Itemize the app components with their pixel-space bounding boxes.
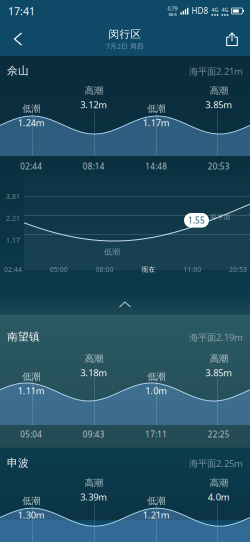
button[interactable]: 南望镇 <box>0 315 250 446</box>
staticText: 20:53 <box>229 265 247 274</box>
staticText: 佘山 <box>7 64 29 77</box>
staticText: 1.21m <box>143 509 170 521</box>
button[interactable]: 返回 <box>3 24 33 54</box>
staticText: 海平面2.25m <box>189 457 243 470</box>
staticText: 低潮 <box>147 103 165 114</box>
staticText: 高潮 <box>210 477 228 489</box>
staticText: 1.24m <box>18 116 45 129</box>
staticText: 0.79 <box>167 5 177 12</box>
staticText: 2.21 <box>6 214 20 223</box>
staticText: 海平面 <box>210 213 231 221</box>
staticText: 高潮 <box>210 353 228 364</box>
staticText: 3.18m <box>80 366 107 379</box>
staticText: 现在 <box>141 265 155 273</box>
staticText: 3.85m <box>205 366 232 379</box>
staticText: 7月2日 周四 <box>106 42 144 50</box>
staticText: 海平面2.21m <box>189 65 243 77</box>
staticText: 高潮 <box>85 85 103 96</box>
staticText: 08:00 <box>96 265 114 274</box>
staticText: 低潮 <box>147 371 165 382</box>
staticText: 08:14 <box>83 161 105 172</box>
staticText: 11:00 <box>183 265 201 274</box>
staticText: 高潮 <box>85 477 103 489</box>
staticText: 南望镇 <box>7 330 40 343</box>
staticText: HD8 <box>191 6 208 16</box>
staticText: 3.12m <box>80 98 107 111</box>
staticText: 4G <box>221 6 228 13</box>
staticText: 17:11 <box>145 429 167 440</box>
staticText: 低潮 <box>22 371 40 382</box>
button[interactable]: 收起 <box>0 294 250 315</box>
staticText: 1.55 <box>188 215 205 226</box>
staticText: 低潮 <box>147 495 165 507</box>
staticText: 3.85m <box>205 98 232 111</box>
button[interactable]: 佘山 <box>0 56 250 175</box>
button[interactable]: 分享 <box>217 24 247 54</box>
staticText: 05:04 <box>20 429 42 440</box>
staticText: 4G <box>211 6 218 13</box>
staticText: 1.30m <box>18 509 45 521</box>
staticText: 海平面2.19m <box>189 331 243 343</box>
staticText: 3.39m <box>80 491 107 503</box>
button[interactable]: 展开 <box>0 446 250 470</box>
staticText: 闵行区 <box>108 27 141 41</box>
staticText: 17:41 <box>8 4 35 18</box>
staticText: 低潮 <box>22 495 40 507</box>
staticText: 4.0m <box>208 491 230 503</box>
staticText: 高潮 <box>210 85 228 96</box>
staticText: 1.11m <box>18 384 45 397</box>
staticText: 1.0m <box>145 384 167 397</box>
staticText: 02:44 <box>20 161 42 172</box>
staticText: 22:25 <box>208 429 230 440</box>
staticText: KB/S <box>168 12 176 17</box>
staticText: 申波 <box>7 456 29 469</box>
staticText: 1.17m <box>143 116 170 129</box>
staticText: 14:48 <box>145 161 167 172</box>
staticText: 1.17 <box>6 236 20 245</box>
staticText: 09:43 <box>83 429 105 440</box>
staticText: 高潮 <box>85 353 103 364</box>
staticText: 低潮 <box>22 103 40 114</box>
staticText: 3.81 <box>6 192 20 201</box>
staticText: 02:44 <box>4 265 22 274</box>
staticText: 05:00 <box>50 265 68 274</box>
button[interactable]: 申波 <box>0 470 250 542</box>
staticText: 低潮 <box>104 247 120 257</box>
staticText: 20:53 <box>208 161 230 172</box>
